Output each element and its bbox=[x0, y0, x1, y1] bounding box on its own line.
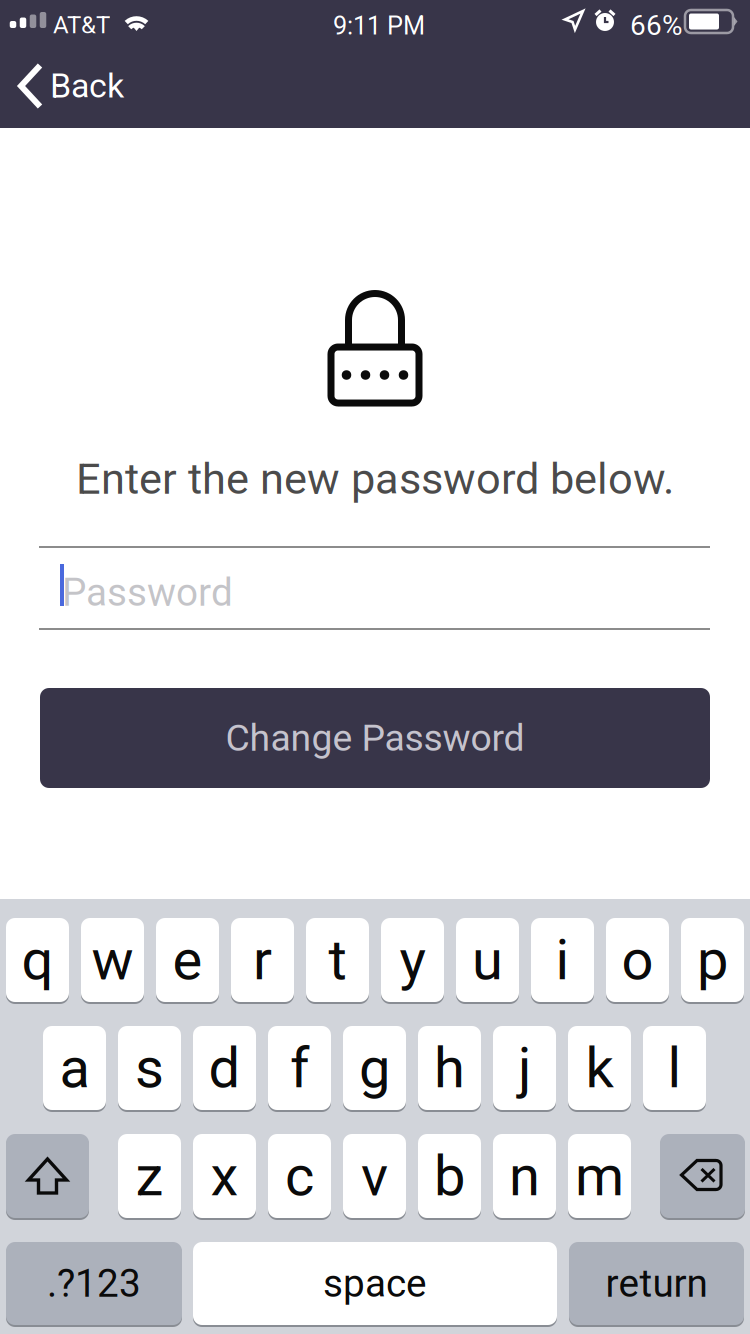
staticText: q bbox=[21, 927, 53, 993]
button[interactable]: Back bbox=[0, 44, 142, 128]
staticText: p bbox=[697, 927, 728, 993]
staticText: v bbox=[361, 1143, 388, 1209]
staticText: 66% bbox=[630, 9, 683, 42]
staticText: d bbox=[208, 1035, 240, 1101]
staticText: Back bbox=[50, 66, 124, 106]
button[interactable]: f bbox=[268, 1026, 331, 1112]
staticText: o bbox=[621, 927, 653, 993]
button[interactable]: return bbox=[569, 1242, 744, 1327]
staticText: Enter the new password below. bbox=[76, 454, 674, 504]
staticText: z bbox=[135, 1143, 163, 1209]
staticText: b bbox=[434, 1143, 465, 1209]
staticText: h bbox=[434, 1035, 465, 1101]
staticText: Change Password bbox=[225, 716, 524, 760]
button[interactable]: e bbox=[156, 918, 219, 1004]
button[interactable]: s bbox=[118, 1026, 181, 1112]
staticText: j bbox=[518, 1035, 531, 1101]
button[interactable]: r bbox=[231, 918, 294, 1004]
button[interactable]: o bbox=[606, 918, 669, 1004]
button[interactable]: j bbox=[493, 1026, 556, 1112]
staticText: .?123 bbox=[47, 1261, 141, 1306]
button[interactable]: y bbox=[381, 918, 444, 1004]
staticText: y bbox=[399, 927, 425, 993]
button[interactable]: Delete bbox=[660, 1134, 745, 1220]
staticText: r bbox=[253, 927, 272, 993]
button[interactable]: g bbox=[343, 1026, 406, 1112]
button[interactable]: u bbox=[456, 918, 519, 1004]
button[interactable]: h bbox=[418, 1026, 481, 1112]
staticText: a bbox=[59, 1035, 89, 1101]
button[interactable]: k bbox=[568, 1026, 631, 1112]
staticText: space bbox=[323, 1261, 427, 1306]
staticText: l bbox=[667, 1035, 681, 1101]
staticText: AT&T bbox=[53, 11, 110, 39]
button[interactable]: .?123 bbox=[6, 1242, 182, 1327]
staticText: return bbox=[605, 1261, 707, 1306]
button[interactable]: i bbox=[531, 918, 594, 1004]
staticText: g bbox=[359, 1035, 390, 1101]
staticText: w bbox=[91, 927, 133, 993]
button[interactable]: q bbox=[6, 918, 69, 1004]
staticText: n bbox=[509, 1143, 540, 1209]
button[interactable]: w bbox=[81, 918, 144, 1004]
button[interactable]: c bbox=[268, 1134, 331, 1220]
staticText: u bbox=[472, 927, 503, 993]
button[interactable]: Shift bbox=[6, 1134, 89, 1220]
button[interactable]: space bbox=[193, 1242, 557, 1327]
button[interactable]: Change Password bbox=[40, 688, 710, 788]
staticText: Password bbox=[62, 570, 233, 615]
button[interactable]: n bbox=[493, 1134, 556, 1220]
staticText: m bbox=[575, 1143, 624, 1209]
button[interactable]: x bbox=[193, 1134, 256, 1220]
button[interactable]: l bbox=[643, 1026, 706, 1112]
button[interactable]: z bbox=[118, 1134, 181, 1220]
staticText: 9:11 PM bbox=[333, 11, 425, 41]
staticText: k bbox=[585, 1035, 613, 1101]
staticText: f bbox=[290, 1035, 309, 1101]
staticText: s bbox=[135, 1035, 164, 1101]
staticText: t bbox=[328, 927, 346, 993]
button[interactable]: d bbox=[193, 1026, 256, 1112]
button[interactable]: a bbox=[43, 1026, 106, 1112]
staticText: x bbox=[210, 1143, 238, 1209]
button[interactable]: t bbox=[306, 918, 369, 1004]
button[interactable]: m bbox=[568, 1134, 631, 1220]
button[interactable]: b bbox=[418, 1134, 481, 1220]
button[interactable]: v bbox=[343, 1134, 406, 1220]
staticText: c bbox=[285, 1143, 314, 1209]
button[interactable]: p bbox=[681, 918, 744, 1004]
staticText: e bbox=[172, 927, 202, 993]
staticText: i bbox=[555, 927, 569, 993]
